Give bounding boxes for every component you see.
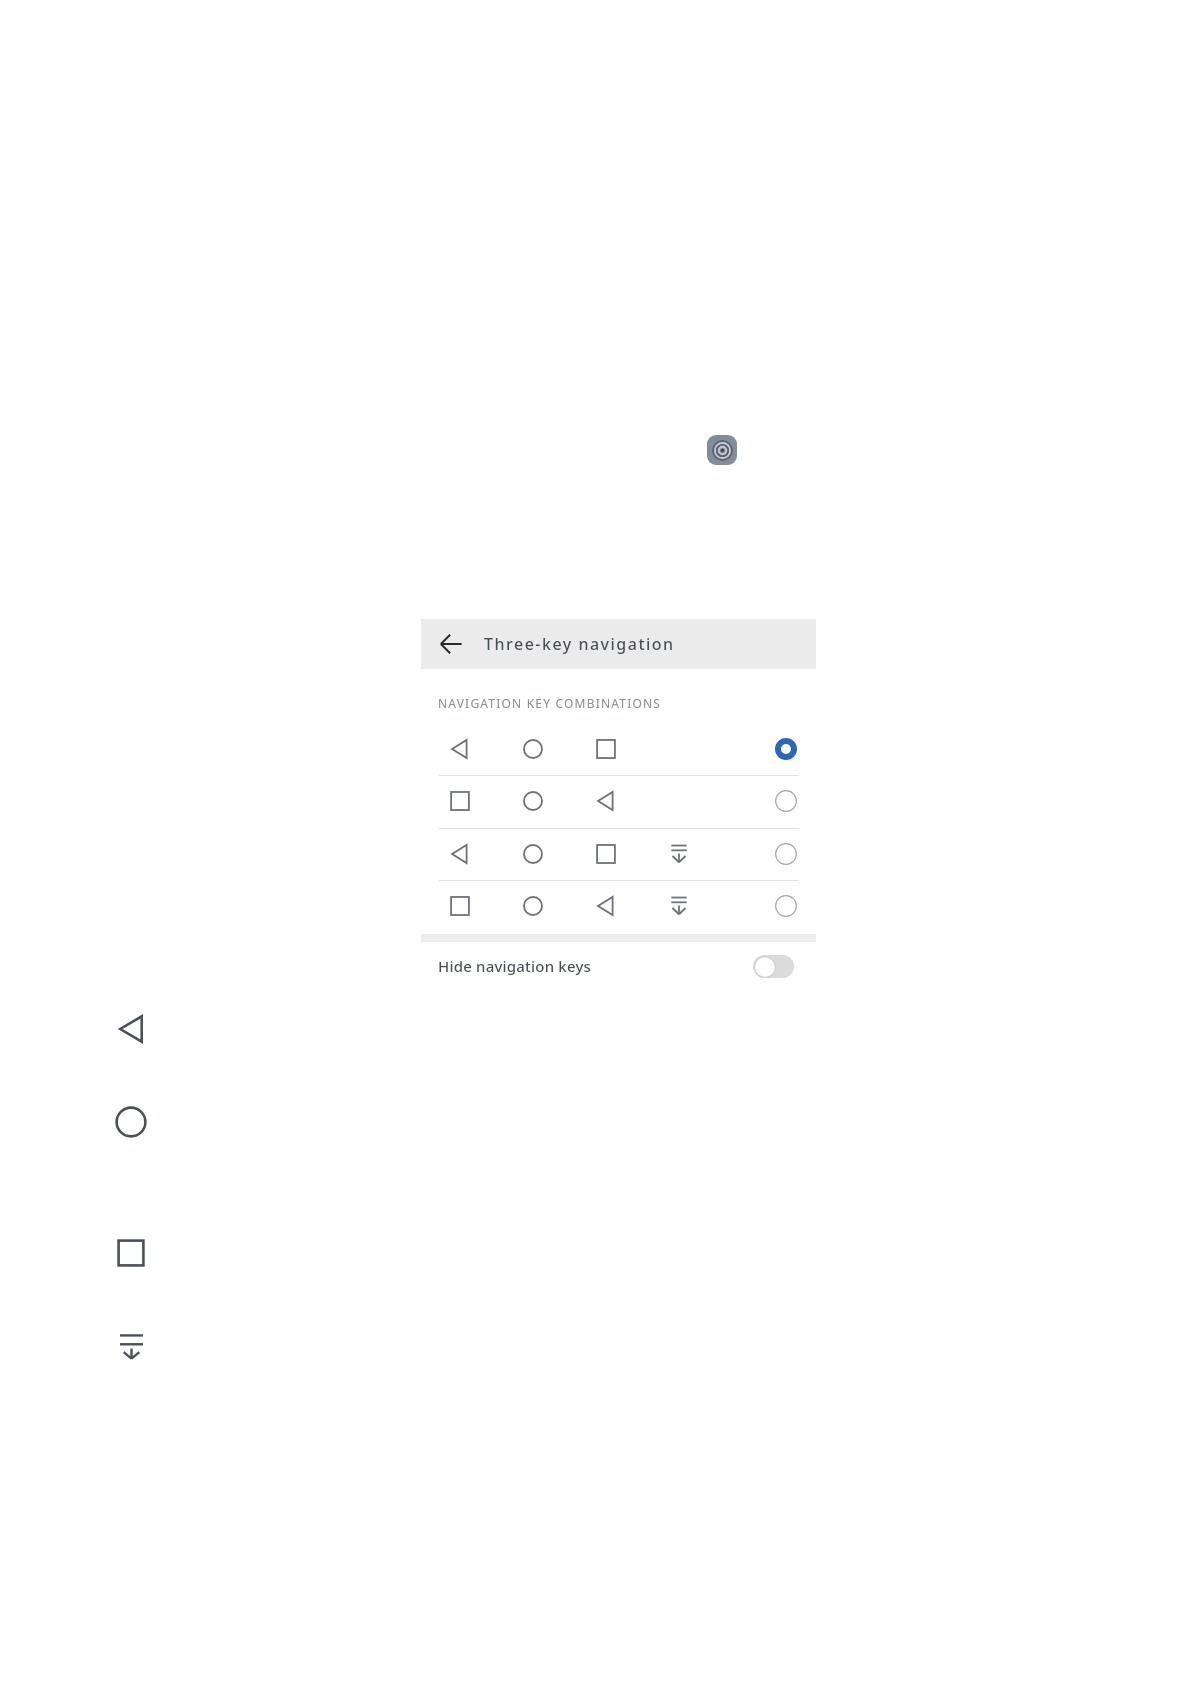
button[interactable]: Select combination <box>773 841 799 867</box>
staticText: NAVIGATION KEY COMBINATIONS <box>438 695 662 711</box>
button[interactable]: Hide navigation keys <box>421 942 816 990</box>
button[interactable]: Back <box>431 624 471 664</box>
button[interactable]: Hide navigation keys <box>753 955 794 978</box>
button[interactable]: Navigation key combination <box>421 723 816 776</box>
button[interactable]: Settings shortcut <box>707 435 737 465</box>
button[interactable]: Navigation key combination <box>421 828 816 881</box>
button[interactable]: Select combination <box>773 788 799 814</box>
button[interactable]: Selected combination <box>773 736 799 762</box>
button[interactable]: Navigation key combination <box>421 880 816 933</box>
staticText: Hide navigation keys <box>438 956 592 976</box>
button[interactable]: Navigation key combination <box>421 775 816 828</box>
staticText: Three-key navigation <box>484 633 675 655</box>
button[interactable]: Select combination <box>773 893 799 919</box>
